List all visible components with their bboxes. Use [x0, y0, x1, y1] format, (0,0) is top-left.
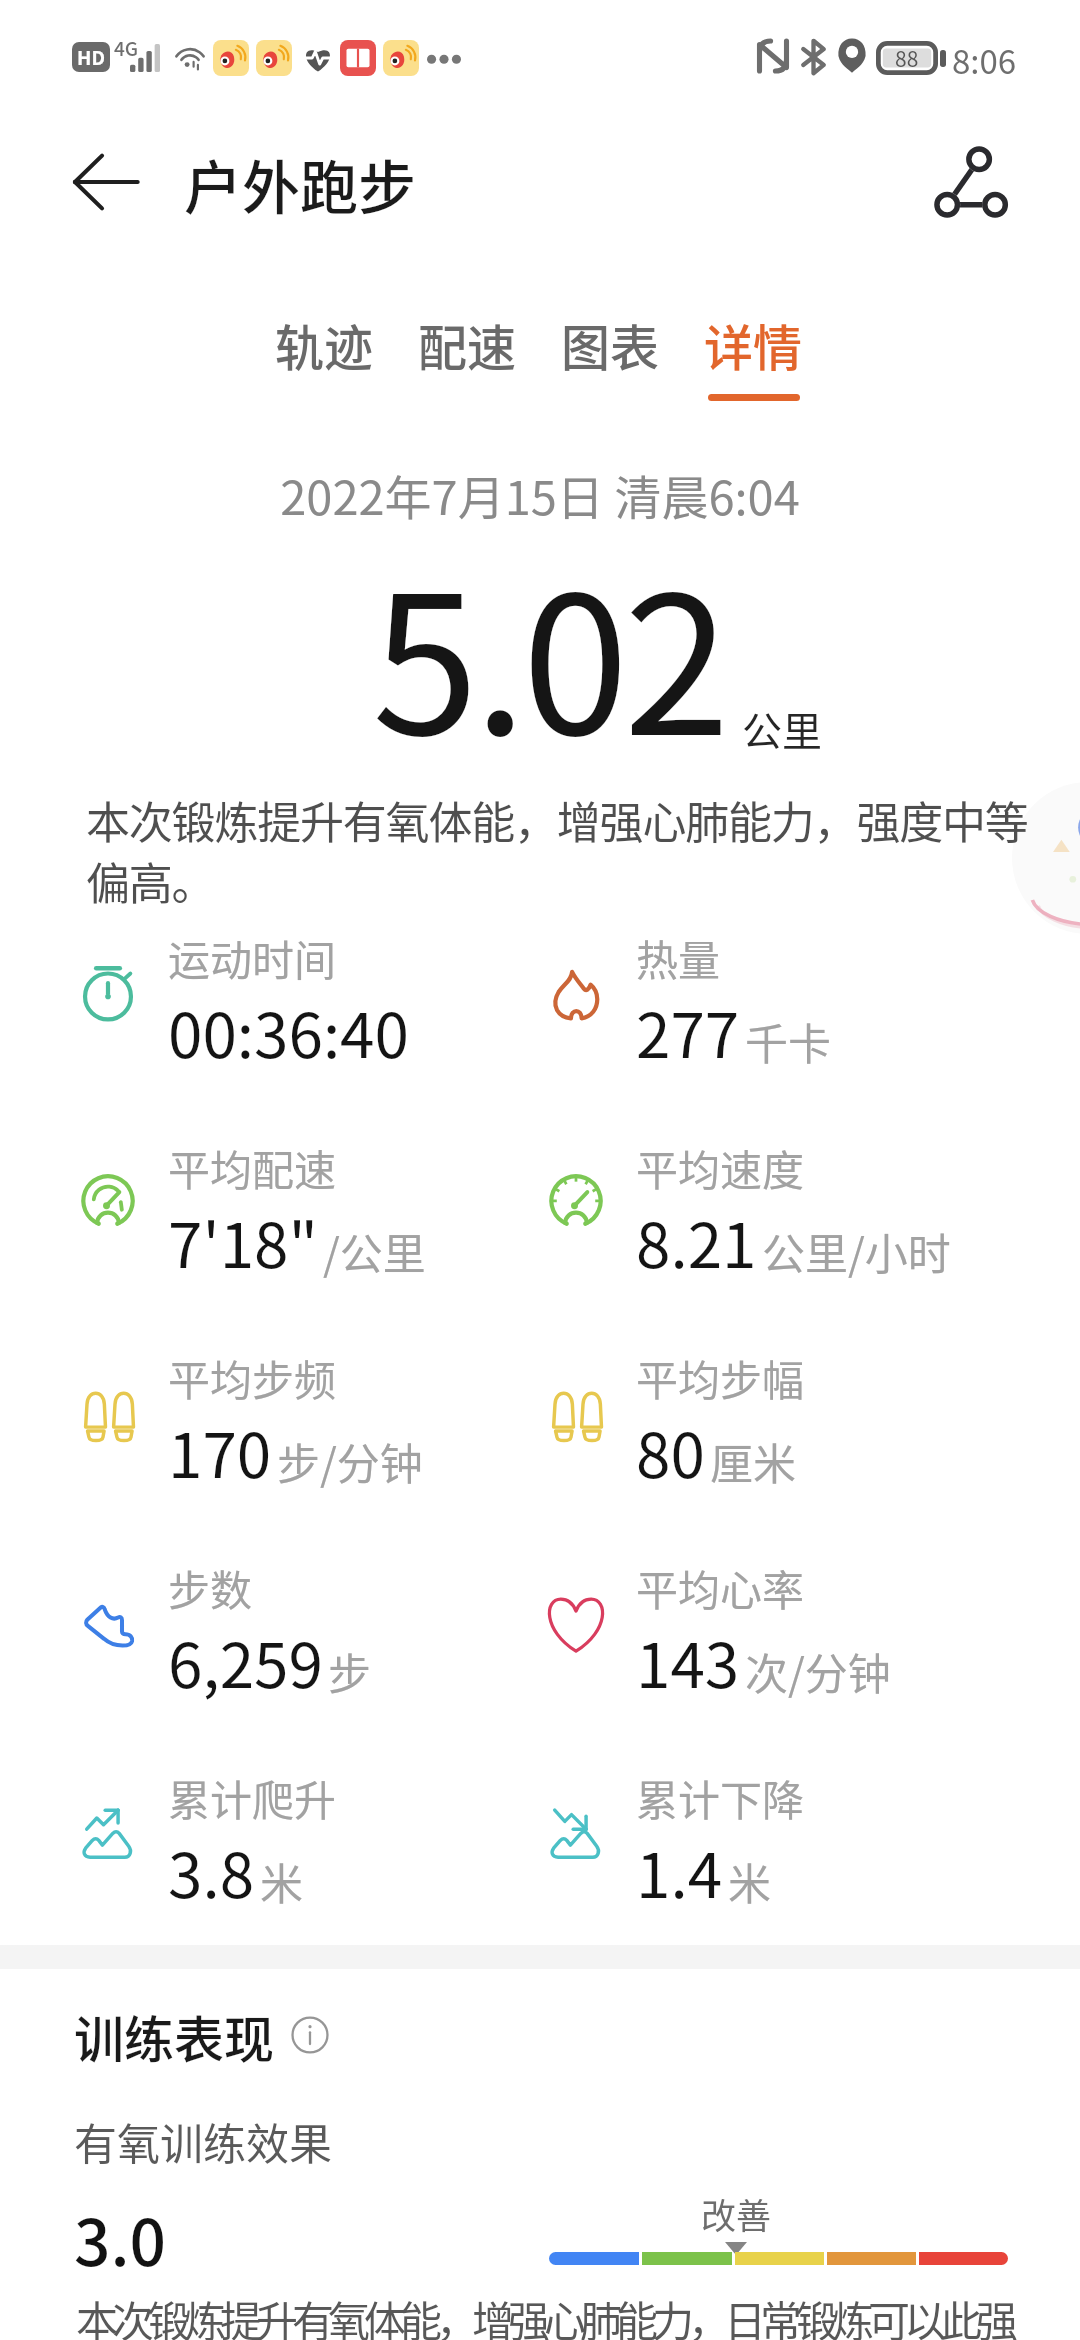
- staticText: 步: [328, 1640, 371, 1702]
- button[interactable]: 平均速度: [548, 1140, 1008, 1270]
- staticText: 3.0: [74, 2192, 167, 2285]
- staticText: 千卡: [745, 1010, 831, 1072]
- button[interactable]: Assistant: [1012, 782, 1080, 934]
- button[interactable]: 图表: [544, 309, 676, 419]
- staticText: 2022年7月15日 清晨6:04: [0, 460, 1080, 528]
- staticText: 277: [636, 986, 740, 1076]
- staticText: 7'18": [168, 1196, 318, 1286]
- staticText: 6,259: [168, 1616, 323, 1706]
- staticText: 4G: [114, 34, 139, 62]
- button[interactable]: 运动时间: [80, 930, 540, 1060]
- button[interactable]: 平均步频: [80, 1350, 540, 1480]
- button[interactable]: About training performance: [288, 2013, 332, 2057]
- staticText: 米: [260, 1850, 303, 1912]
- staticText: 累计爬升: [168, 1767, 337, 1828]
- staticText: 3.8: [168, 1826, 255, 1916]
- staticText: 本次锻炼提升有氧体能，增强心肺能力，强度中等偏高。: [86, 788, 1036, 913]
- staticText: 详情: [704, 309, 803, 380]
- staticText: 图表: [561, 309, 660, 380]
- button[interactable]: 平均心率: [548, 1560, 1008, 1690]
- staticText: 次/分钟: [745, 1640, 891, 1702]
- staticText: 训练表现: [74, 2000, 274, 2070]
- staticText: 米: [728, 1850, 771, 1912]
- staticText: 轨迹: [275, 309, 374, 380]
- staticText: HD: [77, 43, 105, 71]
- staticText: 1.4: [636, 1826, 723, 1916]
- staticText: 170: [168, 1406, 272, 1496]
- staticText: 步数: [168, 1557, 253, 1618]
- staticText: 88: [895, 43, 919, 73]
- button[interactable]: 配速: [401, 309, 533, 419]
- staticText: 平均步幅: [636, 1347, 805, 1408]
- staticText: 累计下降: [636, 1767, 805, 1828]
- button[interactable]: 热量: [548, 930, 1008, 1060]
- staticText: 8.21: [636, 1196, 757, 1286]
- button[interactable]: 轨迹: [258, 309, 390, 419]
- staticText: 公里/小时: [762, 1220, 951, 1282]
- button[interactable]: Back: [44, 120, 168, 244]
- staticText: 本次锻炼提升有氧体能，增强心肺能力，日常锻炼可以此强: [76, 2288, 1080, 2340]
- staticText: 公里: [742, 700, 822, 758]
- staticText: 143: [636, 1616, 740, 1706]
- staticText: 步/分钟: [277, 1430, 423, 1492]
- button[interactable]: 步数: [80, 1560, 540, 1690]
- staticText: 8:06: [952, 36, 1017, 84]
- staticText: 有氧训练效果: [74, 2110, 332, 2172]
- button[interactable]: Share: [910, 122, 1030, 242]
- staticText: 配速: [418, 309, 517, 380]
- staticText: 平均配速: [168, 1137, 337, 1198]
- staticText: 平均速度: [636, 1137, 805, 1198]
- staticText: 厘米: [710, 1430, 796, 1492]
- button[interactable]: 累计下降: [548, 1770, 1008, 1900]
- staticText: 平均步频: [168, 1347, 337, 1408]
- staticText: 运动时间: [168, 927, 337, 988]
- staticText: 户外跑步: [184, 142, 417, 226]
- button[interactable]: 详情: [687, 309, 819, 419]
- staticText: 平均心率: [636, 1557, 805, 1618]
- staticText: 5.02: [372, 512, 726, 790]
- button[interactable]: 累计爬升: [80, 1770, 540, 1900]
- staticText: 00:36:40: [168, 986, 409, 1076]
- button[interactable]: 平均配速: [80, 1140, 540, 1270]
- staticText: 改善: [701, 2188, 772, 2239]
- button[interactable]: 平均步幅: [548, 1350, 1008, 1480]
- staticText: /公里: [323, 1220, 426, 1282]
- staticText: 热量: [636, 927, 721, 988]
- staticText: 80: [636, 1406, 705, 1496]
